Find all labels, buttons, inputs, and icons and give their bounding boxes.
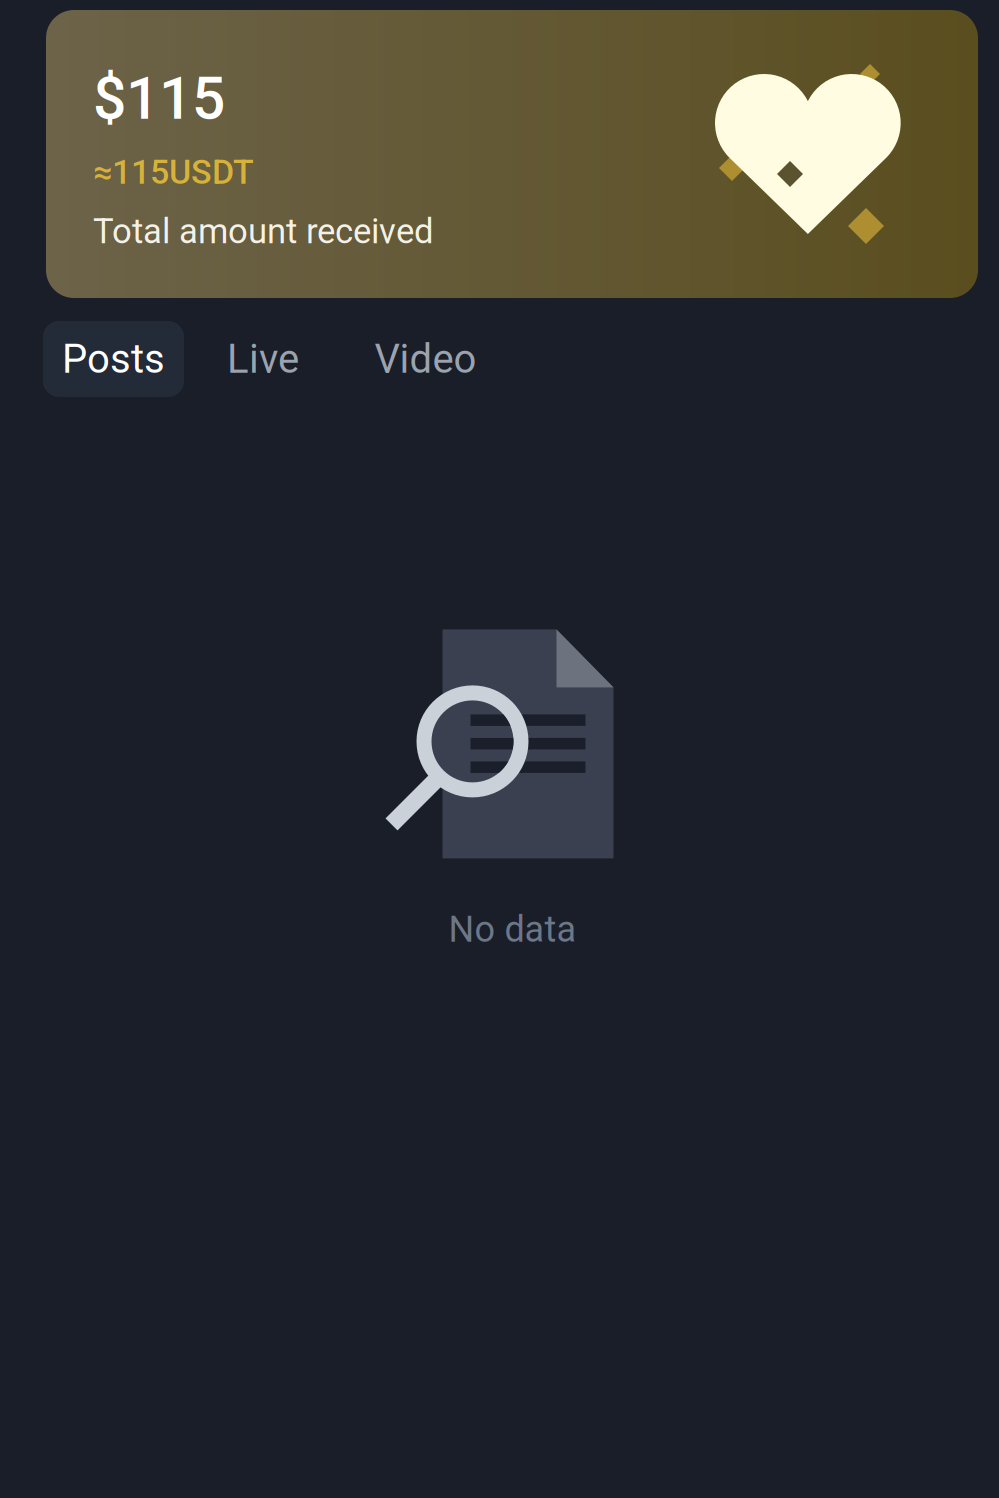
staticText: ≈115USDT (93, 152, 254, 192)
staticText: Posts (62, 336, 165, 382)
button[interactable]: Video (342, 321, 509, 397)
button[interactable]: Live (184, 321, 342, 397)
staticText: No data (448, 908, 576, 951)
staticText: $115 (93, 64, 225, 133)
staticText: Video (374, 336, 476, 382)
button[interactable]: Posts (43, 321, 184, 397)
staticText: Live (227, 336, 299, 382)
staticText: Total amount received (93, 211, 434, 252)
